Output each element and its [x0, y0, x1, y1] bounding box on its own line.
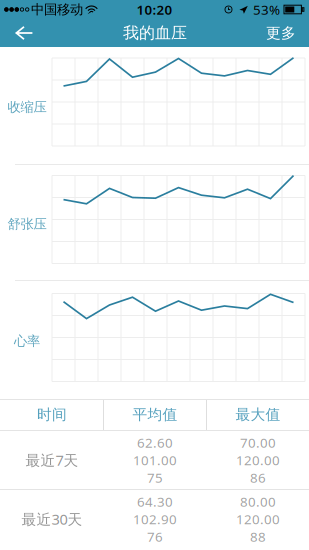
staticText: 70.00 [240, 434, 276, 451]
staticText: 120.00 [236, 510, 280, 528]
staticText: 收缩压 [7, 99, 46, 115]
staticText: 最近7天 [25, 450, 78, 470]
staticText: 53% [253, 1, 280, 18]
staticText: 88 [250, 528, 266, 545]
staticText: 64.30 [137, 493, 173, 510]
staticText: 101.00 [133, 451, 177, 469]
staticText: 最近30天 [21, 509, 82, 529]
staticText: 10:20 [136, 1, 172, 18]
staticText: 80.00 [240, 493, 276, 510]
button[interactable] [0, 489, 309, 548]
staticText: 62.60 [137, 434, 173, 451]
staticText: 75 [147, 469, 163, 486]
button[interactable]: 更多 [259, 18, 303, 48]
staticText: 时间 [37, 405, 67, 423]
staticText: 我的血压 [123, 23, 187, 43]
staticText: 102.90 [133, 510, 177, 528]
staticText: 舒张压 [7, 216, 46, 232]
staticText: 心率 [14, 333, 40, 349]
button[interactable] [0, 430, 309, 489]
staticText: 最大值 [235, 405, 280, 423]
staticText: 平均值 [132, 405, 177, 423]
staticText: 76 [147, 528, 163, 545]
staticText: 更多 [266, 24, 296, 42]
staticText: 86 [250, 469, 266, 486]
staticText: 中国移动 [31, 1, 83, 18]
staticText: 120.00 [236, 451, 280, 469]
button[interactable]: Back [2, 18, 46, 48]
